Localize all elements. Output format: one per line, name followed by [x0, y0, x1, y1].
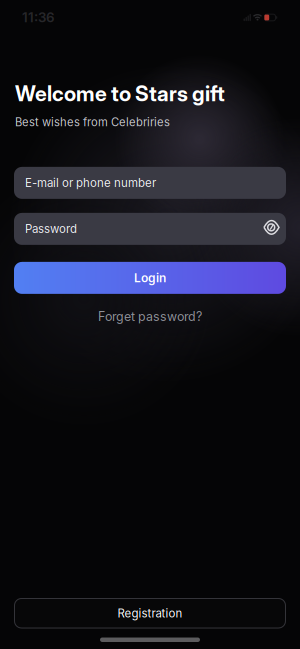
- button[interactable]: Forget password?: [98, 309, 202, 324]
- staticText: Best wishes from Celebriries: [15, 115, 170, 129]
- button[interactable]: Registration: [14, 598, 286, 628]
- staticText: Welcome to Stars gift: [15, 81, 225, 106]
- staticText: Forget password?: [98, 309, 202, 324]
- staticText: E-mail or phone number: [25, 176, 156, 190]
- staticText: 11:36: [22, 9, 55, 25]
- staticText: Login: [134, 271, 166, 285]
- staticText: Password: [25, 222, 77, 236]
- button[interactable]: Password: [14, 213, 286, 245]
- button[interactable]: E-mail or phone number: [14, 167, 286, 199]
- staticText: Registration: [117, 606, 182, 620]
- button[interactable]: Login: [14, 262, 286, 294]
